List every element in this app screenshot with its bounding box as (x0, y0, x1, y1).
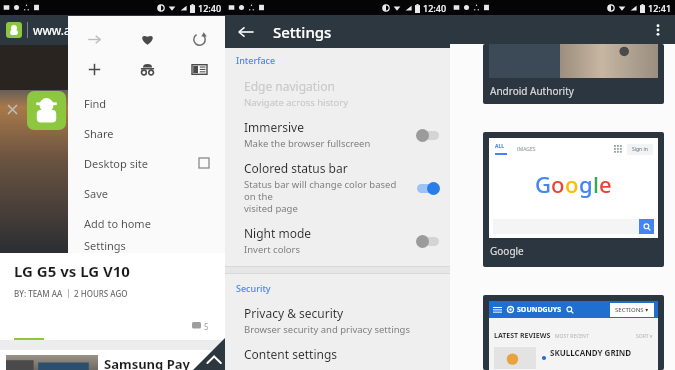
staticText: Invert colors (244, 243, 301, 256)
button[interactable]: LG G5 vs LG V10 (0, 253, 225, 340)
button[interactable]: Back (237, 23, 255, 41)
staticText: Settings (273, 22, 332, 42)
button[interactable]: Share (68, 118, 225, 148)
staticText: Content settings (244, 346, 338, 362)
staticText: SKULLCANDY GRIND (550, 347, 632, 358)
button[interactable]: New tab (68, 54, 121, 84)
button[interactable]: Colored status bar (225, 155, 450, 220)
button[interactable]: Scroll to top (193, 338, 225, 370)
staticText: Android Authority (490, 84, 574, 98)
staticText: Security (236, 282, 271, 294)
staticText: Add to home (84, 216, 151, 231)
button[interactable]: Site icon (6, 22, 22, 38)
button[interactable]: Privacy & security (225, 300, 450, 341)
staticText: Colored status bar (244, 160, 348, 176)
staticText: SOUNDGUYS (517, 305, 562, 315)
button[interactable]: Android Authority (483, 44, 664, 104)
button[interactable]: Immersive (225, 114, 450, 155)
staticText: Status bar will change color based on th… (244, 178, 410, 215)
button[interactable]: Night mode (225, 220, 450, 261)
staticText: Navigate across history (244, 96, 349, 109)
staticText: o (551, 169, 565, 199)
staticText: Privacy & security (244, 305, 344, 321)
button[interactable]: Desktop site (68, 148, 225, 178)
staticText: l (593, 169, 599, 199)
staticText: 12:40 (423, 2, 447, 14)
staticText: Browser security and privacy settings (244, 323, 410, 336)
staticText: e (599, 169, 612, 199)
button[interactable]: Add to home (68, 208, 225, 238)
staticText: 2 HOURS AGO (74, 288, 128, 299)
staticText: Immersive (244, 119, 304, 135)
staticText: 5 (204, 321, 209, 332)
staticText: Settings (84, 238, 126, 253)
staticText: MOST RECENT (555, 333, 589, 340)
button[interactable]: Reload (173, 24, 225, 54)
staticText: www.a (33, 22, 71, 38)
staticText: IMAGES (517, 146, 536, 153)
staticText: o (565, 169, 579, 199)
staticText: Find (84, 96, 107, 111)
staticText: Samsung Pay promo gives new users $20 in… (104, 355, 225, 370)
button[interactable]: Samsung Pay promo gives new users $20 in… (0, 350, 225, 370)
button[interactable]: Settings (68, 238, 225, 253)
staticText: BY: TEAM AA (14, 288, 63, 299)
staticText: LG G5 vs LG V10 (14, 261, 130, 281)
button[interactable]: Android Authority (27, 91, 66, 130)
staticText: g (579, 169, 593, 199)
staticText: SORT ▾ (636, 333, 653, 340)
staticText: SECTIONS ▾ (615, 306, 649, 314)
staticText: 12:40 (198, 2, 222, 14)
button[interactable]: Reader mode (173, 54, 225, 84)
button[interactable]: Forward (68, 24, 121, 54)
staticText: Save (84, 186, 109, 201)
button[interactable]: Content settings (225, 341, 450, 370)
button[interactable]: More options (649, 21, 667, 39)
staticText: Edge navigation (244, 78, 335, 94)
button[interactable]: Bookmark (121, 24, 173, 54)
staticText: Sign in (632, 146, 648, 153)
staticText: Desktop site (84, 156, 148, 171)
staticText: 12:41 (648, 2, 672, 14)
staticText: Google (490, 244, 524, 258)
button[interactable]: SOUNDGUYS (483, 295, 664, 370)
button[interactable]: Find (68, 88, 225, 118)
button[interactable]: ALL (483, 132, 664, 267)
button[interactable]: Save (68, 178, 225, 208)
staticText: LATEST REVIEWS (494, 331, 551, 341)
button[interactable]: Edge navigation (225, 73, 450, 114)
staticText: G (535, 169, 551, 199)
staticText: Make the browser fullscreen (244, 137, 371, 150)
staticText: Interface (236, 54, 276, 66)
button[interactable]: Incognito (121, 54, 173, 84)
staticText: Share (84, 126, 114, 141)
staticText: ALL (495, 143, 505, 150)
staticText: Night mode (244, 225, 312, 241)
